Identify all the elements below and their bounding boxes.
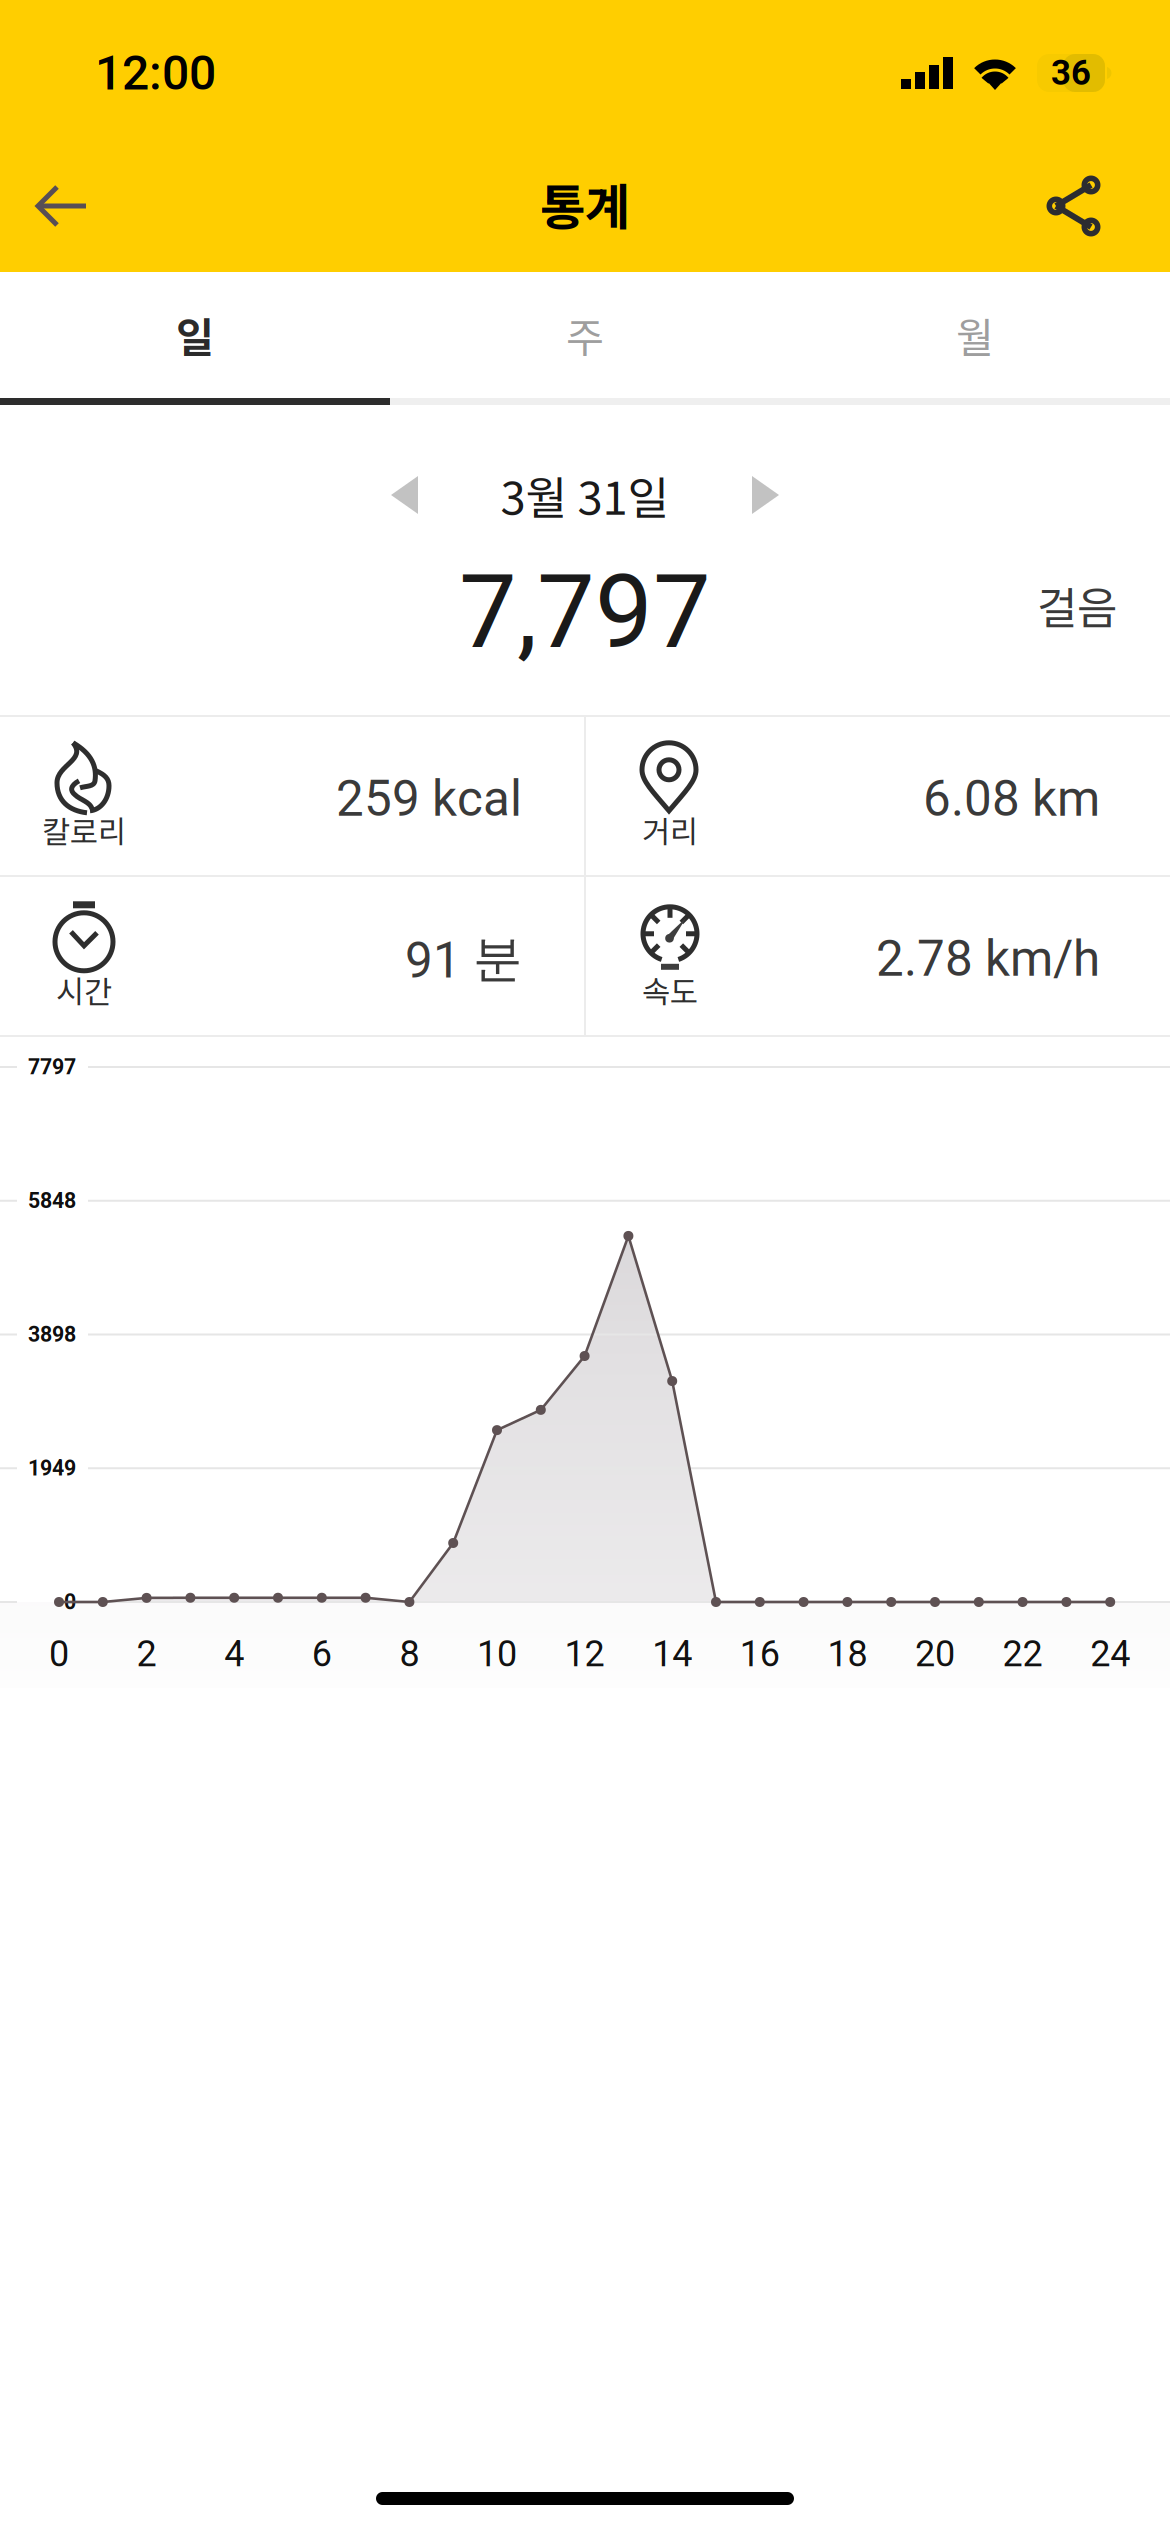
staticText: 6 — [312, 1633, 332, 1675]
staticText: 8 — [399, 1633, 419, 1675]
staticText: 0 — [49, 1633, 69, 1675]
staticText: 4 — [224, 1633, 244, 1675]
staticText: 월 — [956, 305, 994, 365]
staticText: 3월 31일 — [500, 462, 669, 528]
staticText: 거리 — [642, 808, 698, 852]
staticText: 12:00 — [95, 45, 216, 101]
staticText: 24 — [1090, 1633, 1130, 1675]
staticText: 22 — [1003, 1633, 1043, 1675]
staticText: 2 — [137, 1633, 157, 1675]
staticText: 1949 — [28, 1456, 76, 1481]
staticText: 10 — [477, 1633, 517, 1675]
staticText: 3898 — [28, 1322, 76, 1347]
staticText: 속도 — [642, 968, 698, 1012]
button[interactable]: Next day — [728, 452, 803, 538]
staticText: 14 — [652, 1633, 692, 1675]
button[interactable]: 월 — [780, 272, 1170, 398]
staticText: 12 — [565, 1633, 605, 1675]
staticText: 7797 — [28, 1054, 76, 1079]
staticText: 36 — [1051, 53, 1091, 93]
staticText: 시간 — [56, 968, 112, 1012]
staticText: 통계 — [540, 168, 630, 240]
button[interactable]: 주 — [390, 272, 780, 398]
staticText: 걸음 — [1037, 573, 1117, 637]
staticText: 91 분 — [405, 928, 522, 990]
staticText: 2.78 km/h — [876, 930, 1100, 988]
staticText: 5848 — [28, 1188, 76, 1213]
staticText: 18 — [827, 1633, 867, 1675]
staticText: 259 kcal — [336, 770, 522, 828]
staticText: 16 — [740, 1633, 780, 1675]
staticText: 일 — [176, 305, 214, 365]
button[interactable]: Share — [1028, 157, 1119, 255]
staticText: 0 — [64, 1589, 76, 1614]
staticText: 20 — [915, 1633, 955, 1675]
staticText: 7,797 — [459, 552, 711, 672]
button[interactable]: 일 — [0, 272, 390, 398]
staticText: 칼로리 — [42, 808, 126, 852]
staticText: 주 — [566, 305, 604, 365]
button[interactable]: Back — [18, 166, 106, 246]
staticText: 6.08 km — [923, 770, 1100, 828]
button[interactable]: Previous day — [367, 452, 442, 538]
